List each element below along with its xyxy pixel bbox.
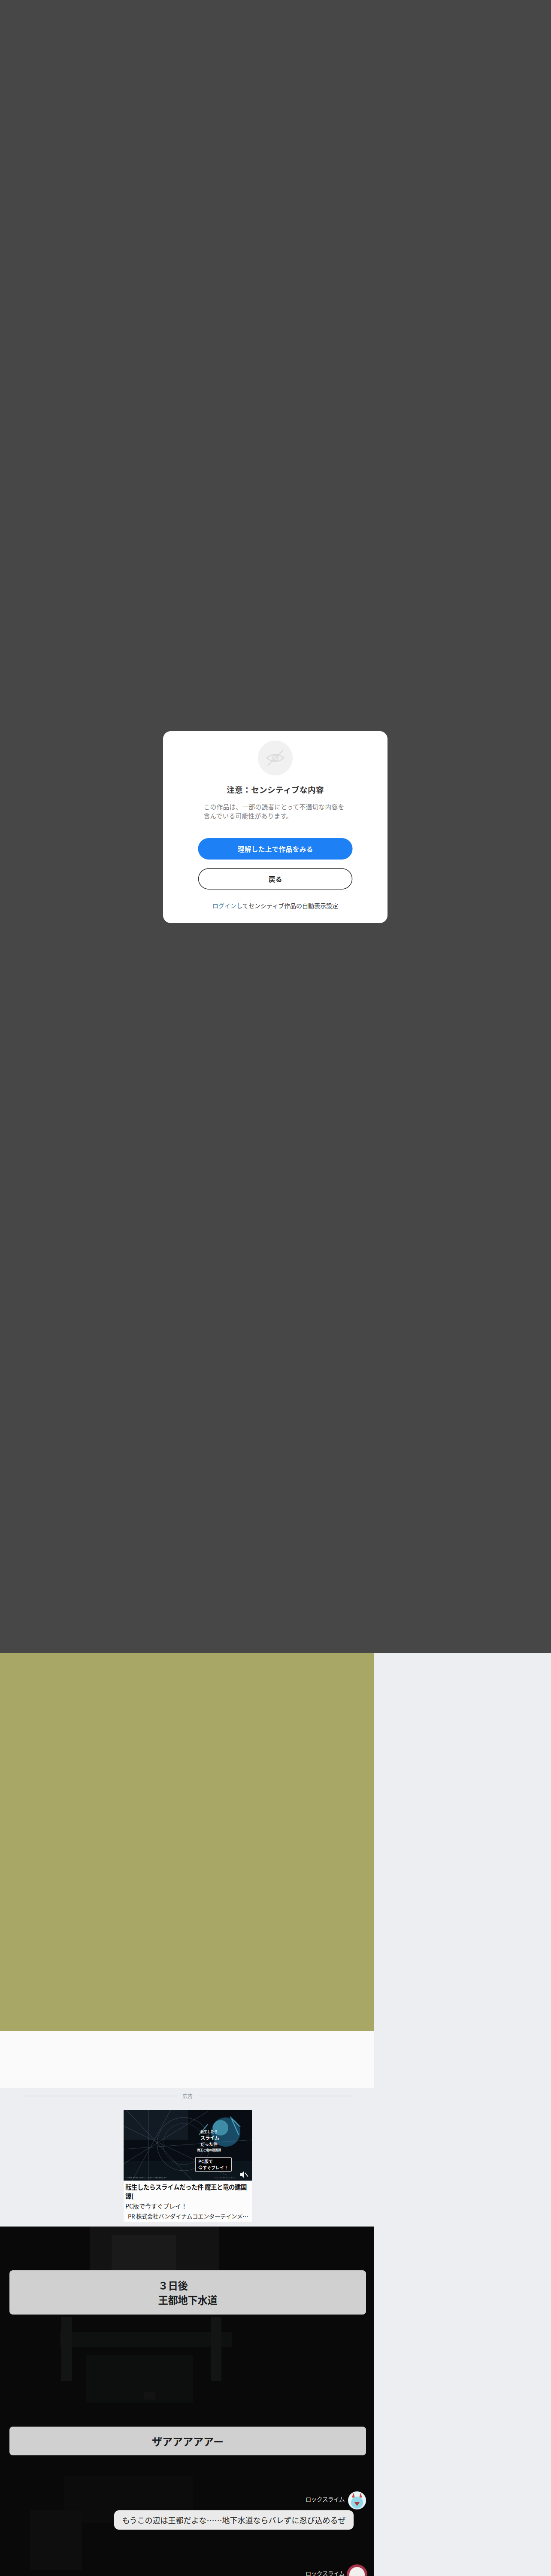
staticText: ログイン — [212, 901, 236, 910]
staticText: 注意：センシティブな内容 — [227, 784, 324, 795]
staticText: もうこの辺は王都だよな……地下水道ならバレずに忍び込めるぜ — [122, 2514, 346, 2526]
staticText: 広告 — [182, 2092, 193, 2100]
button[interactable]: 転生したら — [124, 2110, 252, 2222]
staticText: 理解した上で作品をみる — [238, 844, 313, 854]
staticText: 戻る — [268, 874, 282, 884]
staticText: 転生したら — [200, 2129, 218, 2134]
staticText: スライム — [200, 2134, 219, 2141]
staticText: ロックスライム — [306, 2569, 345, 2576]
staticText: ３日後 王都地下水道 — [158, 2278, 217, 2307]
staticText: ロックスライム — [306, 2495, 345, 2503]
button[interactable]: 理解した上で作品をみる — [198, 838, 353, 860]
staticText: PR 株式会社バンダイナムコエンターテインメ… — [128, 2212, 248, 2220]
staticText: PC版で今すぐプレイ！ — [125, 2201, 187, 2210]
staticText: 転生したらスライムだった件 魔王と竜の建国譚[ — [125, 2182, 247, 2200]
staticText: ザアアアアアー — [152, 2434, 224, 2448]
staticText: この作品は、一部の読者にとって不適切な内容を含んでいる可能性があります。 — [204, 802, 344, 820]
button[interactable]: ログイン — [212, 900, 338, 911]
staticText: リアル体験。変な世界でのクセモノ、ソロ活とソレが絡む描き出しあり — [125, 2177, 167, 2179]
staticText: PC版で 今すぐプレイ！ — [198, 2158, 228, 2171]
staticText: 魔王と竜の建国譚 — [197, 2148, 221, 2152]
staticText: © い火 / が ミカ & アニメ / ゲーム・ — [215, 2177, 236, 2179]
staticText: だった件 — [200, 2141, 218, 2147]
button[interactable]: 戻る — [198, 869, 352, 889]
staticText: してセンシティブ作品の自動表示設定 — [236, 901, 338, 910]
